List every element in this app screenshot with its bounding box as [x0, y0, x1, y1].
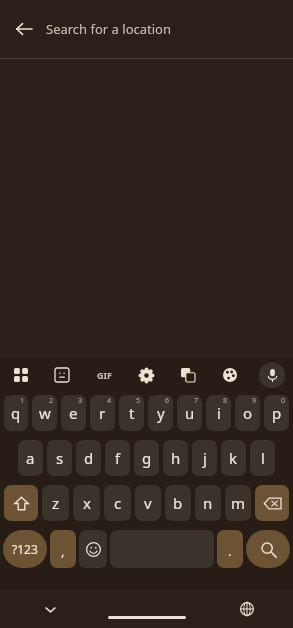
staticText: n [203, 493, 213, 513]
button[interactable]: . [217, 530, 243, 568]
staticText: w [39, 403, 51, 423]
staticText: g [142, 448, 152, 468]
button[interactable]: v [135, 485, 161, 521]
button[interactable]: Emoji [79, 530, 107, 568]
staticText: j [203, 448, 207, 468]
staticText: , [61, 542, 65, 560]
staticText: p [272, 403, 282, 423]
staticText: y [157, 403, 165, 423]
staticText: k [229, 448, 238, 468]
button[interactable]: , [50, 530, 76, 568]
staticText: h [171, 448, 181, 468]
button[interactable]: n [195, 485, 221, 521]
button[interactable]: Backspace [255, 485, 289, 521]
staticText: q [11, 403, 21, 423]
staticText: i [217, 403, 221, 423]
staticText: Search for a location [46, 20, 171, 38]
button[interactable]: s [47, 440, 72, 476]
button[interactable]: Settings [125, 358, 167, 392]
staticText: u [185, 403, 195, 423]
button[interactable]: Apps [0, 358, 41, 392]
button[interactable]: w [32, 395, 57, 431]
button[interactable]: Hide keyboard [36, 595, 64, 623]
staticText: GIF [97, 369, 112, 381]
staticText: f [115, 448, 121, 468]
staticText: s [56, 448, 64, 468]
staticText: d [84, 448, 94, 468]
staticText: 4 [107, 396, 112, 406]
staticText: 0 [281, 396, 286, 406]
staticText: o [243, 403, 253, 423]
staticText: m [231, 493, 246, 513]
staticText: 9 [252, 396, 257, 406]
button[interactable]: j [192, 440, 217, 476]
button[interactable]: u [177, 395, 202, 431]
button[interactable]: z [42, 485, 69, 521]
button[interactable]: o [235, 395, 260, 431]
button[interactable]: Search [246, 530, 290, 568]
button[interactable]: c [104, 485, 131, 521]
staticText: l [261, 448, 265, 468]
button[interactable]: i [206, 395, 231, 431]
staticText: z [52, 493, 60, 513]
staticText: e [69, 403, 78, 423]
button[interactable]: p [264, 395, 289, 431]
button[interactable]: t [119, 395, 144, 431]
button[interactable]: l [250, 440, 275, 476]
button[interactable]: GIF [83, 358, 125, 392]
staticText: 8 [223, 396, 228, 406]
button[interactable]: y [148, 395, 173, 431]
button[interactable]: q [4, 395, 28, 431]
button[interactable]: r [90, 395, 115, 431]
staticText: 1 [20, 396, 25, 406]
staticText: ?123 [12, 541, 38, 557]
button[interactable]: Change language [233, 595, 261, 623]
button[interactable]: h [163, 440, 188, 476]
staticText: 2 [49, 396, 54, 406]
button[interactable]: k [221, 440, 246, 476]
staticText: t [129, 403, 135, 423]
button[interactable]: Back [8, 13, 40, 45]
staticText: x [83, 493, 91, 513]
staticText: 7 [194, 396, 199, 406]
button[interactable]: Translate [167, 358, 209, 392]
staticText: r [99, 403, 106, 423]
staticText: 5 [136, 396, 141, 406]
staticText: c [114, 493, 122, 513]
button[interactable]: g [134, 440, 159, 476]
staticText: 3 [78, 396, 83, 406]
staticText: 6 [165, 396, 170, 406]
button[interactable]: Back [0, 0, 293, 58]
staticText: . [228, 542, 232, 560]
button[interactable]: Shift [4, 485, 38, 521]
staticText: v [144, 493, 152, 513]
button[interactable]: Themes [209, 358, 251, 392]
staticText: a [26, 448, 35, 468]
button[interactable]: f [105, 440, 130, 476]
button[interactable]: Stickers [41, 358, 83, 392]
button[interactable]: Voice input [251, 358, 293, 392]
button[interactable]: a [18, 440, 43, 476]
button[interactable]: m [225, 485, 251, 521]
button[interactable]: x [73, 485, 100, 521]
button[interactable]: d [76, 440, 101, 476]
button[interactable]: b [165, 485, 191, 521]
staticText: b [173, 493, 183, 513]
button[interactable]: e [61, 395, 86, 431]
button[interactable]: ?123 [3, 530, 47, 568]
